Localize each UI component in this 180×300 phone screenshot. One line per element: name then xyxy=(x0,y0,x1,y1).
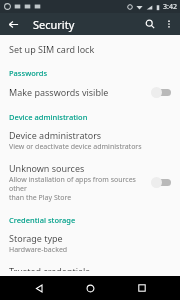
button[interactable]: Make passwords visible xyxy=(0,80,180,104)
button[interactable]: Home xyxy=(77,276,103,300)
button[interactable]: Recent apps xyxy=(129,276,155,300)
button[interactable]: Trusted credentials xyxy=(0,260,180,276)
button[interactable]: More options xyxy=(160,15,178,33)
button[interactable]: Toggle xyxy=(151,175,173,189)
button[interactable]: Search xyxy=(140,14,160,34)
staticText: Unknown sources xyxy=(9,162,85,174)
staticText: Device administrators xyxy=(9,129,102,141)
staticText: Passwords xyxy=(9,68,48,78)
button[interactable]: Device administrators xyxy=(0,124,180,157)
staticText: Hardware-backed xyxy=(9,245,68,255)
staticText: Credential storage xyxy=(9,215,76,225)
button[interactable]: Set up SIM card lock xyxy=(0,38,180,60)
staticText: Device administration xyxy=(9,112,88,122)
button[interactable]: Toggle xyxy=(151,85,173,99)
button[interactable]: Unknown sources xyxy=(0,157,180,207)
staticText: Trusted credentials xyxy=(9,265,90,271)
staticText: Storage type xyxy=(9,232,63,244)
staticText: 3:42 xyxy=(163,2,177,12)
staticText: Security xyxy=(33,17,75,32)
button[interactable]: Back xyxy=(26,276,52,300)
staticText: View or deactivate device administrators xyxy=(9,142,142,152)
button[interactable]: Storage type xyxy=(0,227,180,260)
staticText: Make passwords visible xyxy=(9,86,109,98)
button[interactable]: Back xyxy=(3,14,23,34)
staticText: Allow installation of apps from sources … xyxy=(9,175,147,202)
staticText: Set up SIM card lock xyxy=(9,43,95,55)
